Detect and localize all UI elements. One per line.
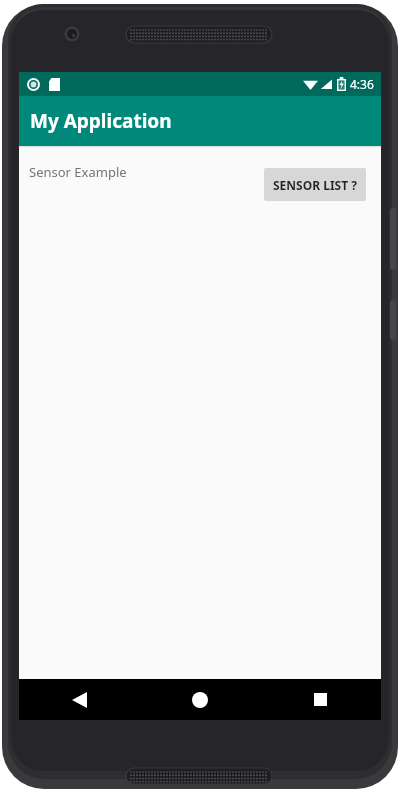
- button[interactable]: Home: [139, 679, 260, 720]
- staticText: 4:36: [350, 76, 374, 92]
- button[interactable]: Back: [19, 679, 139, 720]
- staticText: SENSOR LIST ?: [273, 177, 357, 193]
- button[interactable]: Recent apps: [260, 679, 381, 720]
- staticText: My Application: [30, 108, 172, 134]
- button[interactable]: SENSOR LIST ?: [264, 168, 366, 201]
- staticText: Sensor Example: [29, 163, 127, 181]
